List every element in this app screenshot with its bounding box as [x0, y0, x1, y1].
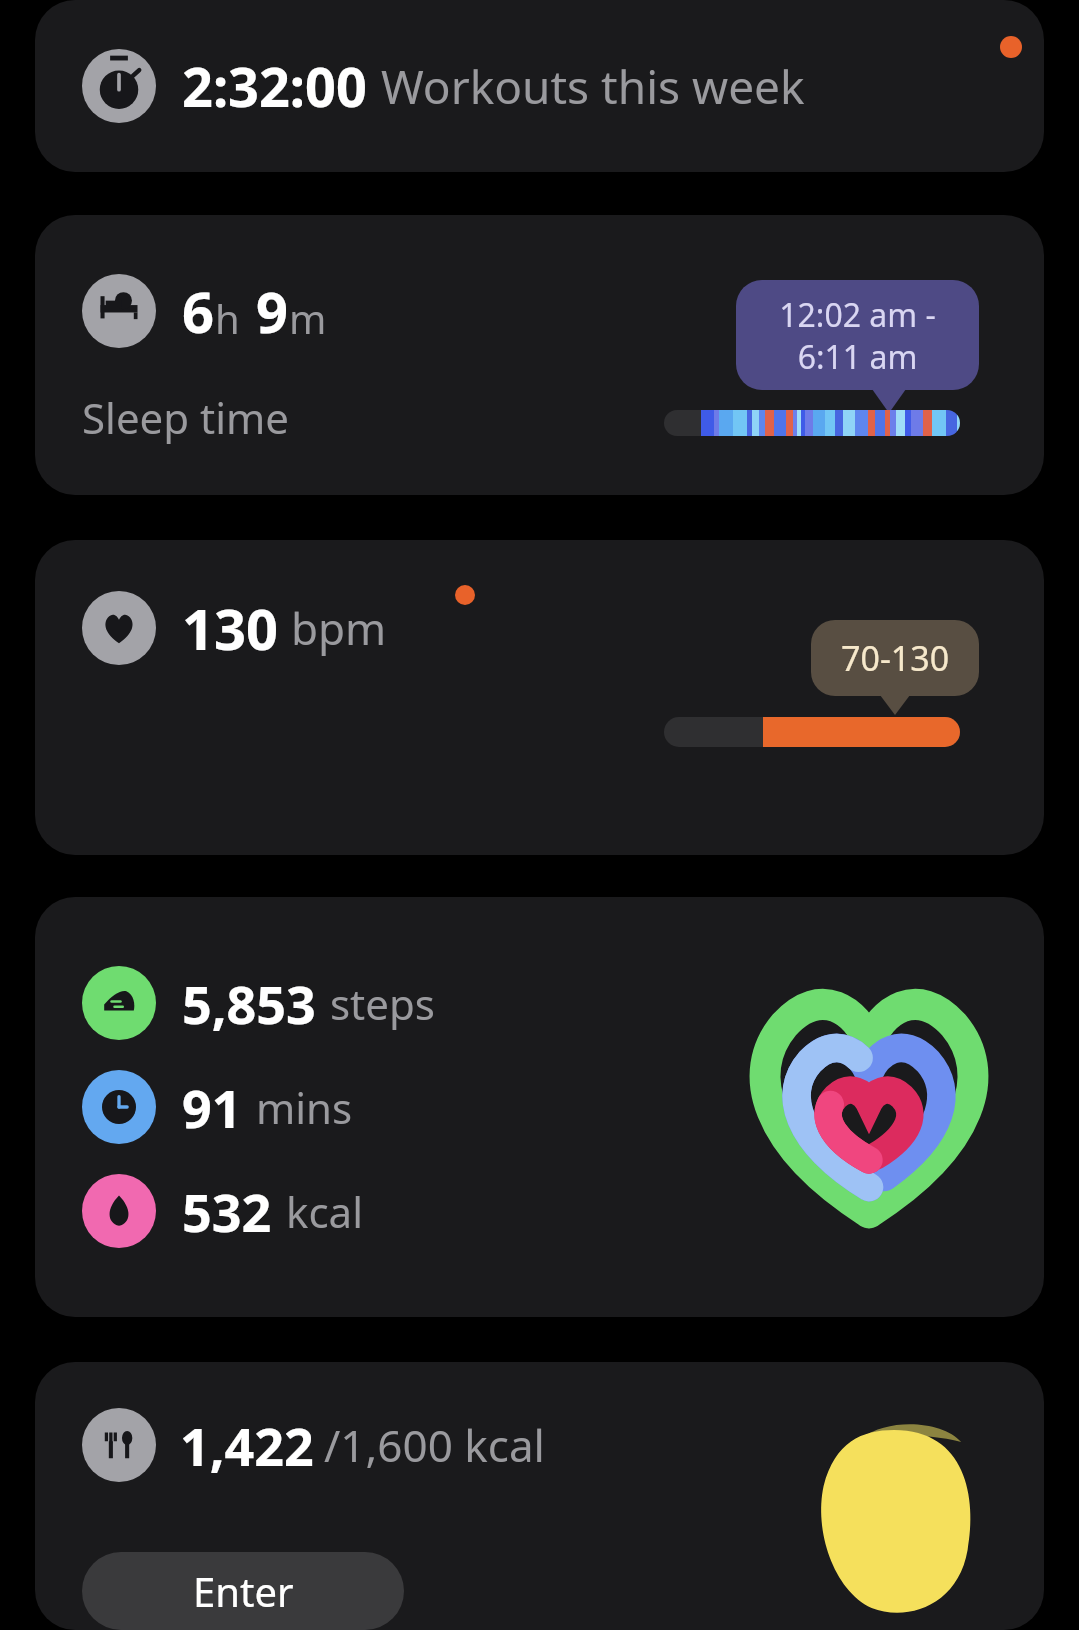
- staticText: Enter: [193, 1564, 294, 1618]
- staticText: 12:02 am - 6:11 am: [779, 293, 936, 378]
- staticText: 9: [256, 273, 289, 349]
- button[interactable]: 130: [35, 540, 1044, 855]
- staticText: kcal: [286, 1183, 363, 1240]
- staticText: bpm: [291, 598, 387, 658]
- staticText: /1,600 kcal: [324, 1415, 545, 1475]
- staticText: 2:32:00: [182, 49, 367, 123]
- staticText: Sleep time: [82, 389, 289, 446]
- staticText: 6: [182, 273, 215, 349]
- staticText: 130: [182, 590, 279, 666]
- staticText: 1,422: [180, 1410, 314, 1481]
- button[interactable]: 2:32:00: [35, 0, 1044, 172]
- staticText: 70-130: [841, 635, 950, 681]
- staticText: steps: [330, 975, 435, 1032]
- button[interactable]: 5,853: [35, 897, 1044, 1317]
- staticText: 91: [182, 1072, 242, 1143]
- staticText: Workouts this week: [381, 55, 805, 118]
- staticText: 5,853: [182, 968, 316, 1039]
- button[interactable]: Enter: [82, 1552, 404, 1630]
- staticText: 532: [182, 1176, 272, 1247]
- staticText: mins: [256, 1079, 353, 1136]
- button[interactable]: 6: [35, 215, 1044, 495]
- staticText: h: [215, 291, 240, 345]
- button[interactable]: 1,422: [35, 1362, 1044, 1630]
- staticText: m: [289, 291, 327, 345]
